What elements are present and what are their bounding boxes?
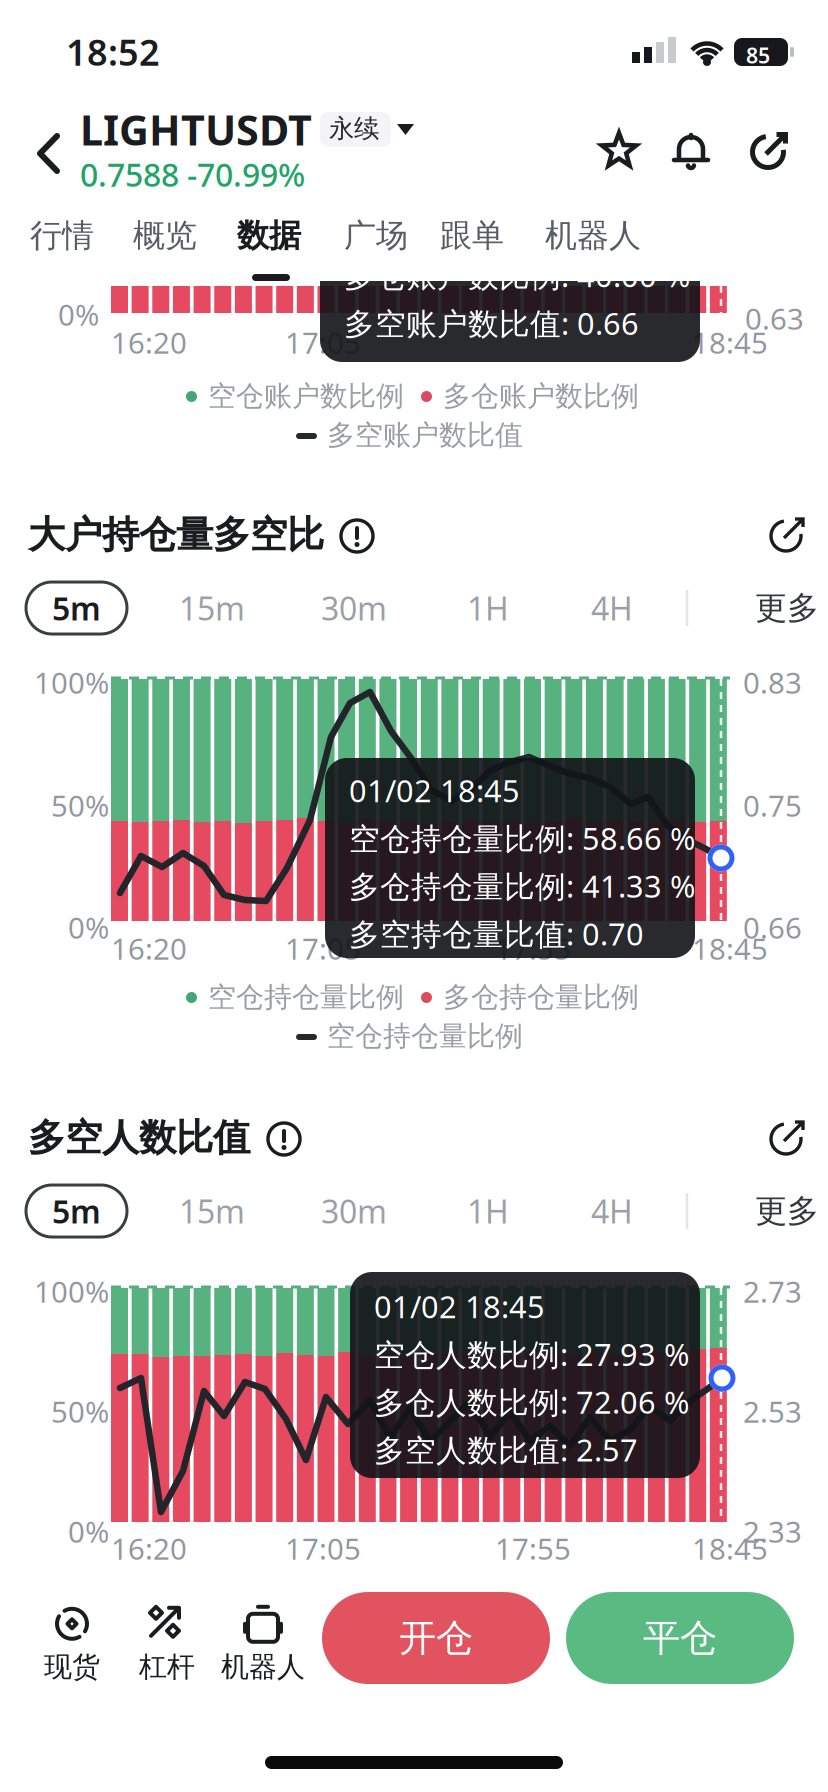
staticText: 18:45 [692,323,768,362]
button[interactable]: 现货 [17,1596,127,1692]
staticText: 多仓账户数比例: 40.00 % [344,255,690,296]
staticText: 30m [321,1190,387,1232]
button[interactable]: 4H [576,582,648,634]
staticText: 5m [52,1190,101,1232]
staticText: 更多 [755,588,819,628]
staticText: 0.63 [745,299,804,338]
button[interactable]: 30m [318,1185,390,1237]
staticText: 0% [68,1512,109,1551]
staticText: 空仓账户数比例 [208,379,404,413]
staticText: 大户持仓量多空比 [28,512,324,558]
staticText: 17:05 [285,1529,361,1568]
staticText: 空仓持仓量比例 [327,1019,523,1053]
staticText: 多空人数比值 [28,1115,250,1161]
button[interactable]: 机器人 [208,1596,318,1692]
staticText: 17:55 [495,929,571,968]
staticText: 18:45 [692,929,768,968]
staticText: 多仓账户数比例 [443,379,639,413]
staticText: 多空账户数比值 [327,418,523,452]
button[interactable]: Share [746,130,790,174]
staticText: 17:55 [495,1529,571,1568]
button[interactable]: 更多 [742,582,828,634]
staticText: 5m [52,587,101,629]
staticText: 30m [321,587,387,629]
staticText: 空仓持仓量比例: 58.66 % [349,818,695,858]
staticText: 100% [34,663,109,702]
staticText: 空仓人数比例: 27.93 % [374,1334,689,1374]
staticText: 数据 [237,216,301,255]
button[interactable]: 行情 [30,216,94,255]
staticText: 永续 [329,113,379,144]
button[interactable]: 4H [576,1185,648,1237]
button[interactable]: 30m [318,582,390,634]
button[interactable]: 杠杆 [112,1596,222,1692]
button[interactable]: 1H [452,1185,524,1237]
staticText: 4H [591,587,633,629]
staticText: 1H [467,1190,509,1232]
staticText: 50% [51,786,109,825]
staticText: 2.53 [743,1392,802,1431]
button[interactable]: 机器人 [545,216,641,255]
staticText: 01/02 18:45 [349,770,520,811]
staticText: 2.73 [743,1272,802,1311]
button[interactable]: Favorite [597,128,641,172]
staticText: 更多 [755,1191,819,1231]
staticText: 多空账户数比值: 0.66 [344,303,639,343]
staticText: 开仓 [399,1615,473,1661]
staticText: 0.7588 -70.99% [80,153,305,195]
staticText: 2.33 [743,1512,802,1551]
staticText: 多仓持仓量比例 [443,980,639,1014]
staticText: 多空持仓量比值: 0.70 [349,913,644,954]
staticText: 杠杆 [139,1650,195,1684]
staticText: 多仓人数比例: 72.06 % [374,1381,689,1422]
staticText: 概览 [133,216,197,255]
staticText: 0.66 [743,908,802,947]
staticText: 机器人 [221,1650,305,1684]
staticText: 0% [68,908,109,947]
staticText: 0.75 [743,786,802,825]
button[interactable]: 概览 [133,216,197,255]
button[interactable]: 广场 [344,216,408,255]
staticText: 1H [467,587,509,629]
staticText: 平仓 [643,1615,717,1661]
button[interactable]: 15m [176,582,248,634]
staticText: 现货 [44,1650,100,1684]
button[interactable]: Share [764,514,808,558]
button[interactable]: Share [764,1117,808,1161]
staticText: 多仓持仓量比例: 41.33 % [349,865,695,906]
staticText: 15m [179,587,245,629]
staticText: 85 [746,41,770,69]
staticText: 17:05 [285,323,361,362]
staticText: 17:05 [285,929,361,968]
staticText: 空仓持仓量比例 [208,980,404,1014]
button[interactable]: 跟单 [440,216,504,255]
button[interactable]: 1H [452,582,524,634]
staticText: 18:52 [66,28,160,76]
button[interactable]: 5m [26,1185,127,1237]
staticText: 0% [58,295,99,334]
staticText: 4H [591,1190,633,1232]
staticText: 机器人 [545,216,641,255]
staticText: 广场 [344,216,408,255]
staticText: 18:45 [692,1529,768,1568]
staticText: 16:20 [111,323,187,362]
button[interactable]: Contract selector [320,112,416,147]
staticText: 100% [34,1272,109,1311]
button[interactable]: Back [36,132,62,176]
staticText: 多空人数比值: 2.57 [374,1429,638,1470]
staticText: 01/02 18:45 [374,1286,545,1327]
button[interactable]: 开仓 [322,1592,550,1684]
button[interactable]: 平仓 [566,1592,794,1684]
staticText: LIGHTUSDT [80,102,312,157]
staticText: 15m [179,1190,245,1232]
button[interactable]: 更多 [742,1185,828,1237]
staticText: 50% [51,1392,109,1431]
button[interactable]: 5m [26,582,127,634]
staticText: 行情 [30,216,94,255]
staticText: 0.83 [743,663,802,702]
button[interactable]: Alerts [669,130,713,174]
staticText: 16:20 [111,929,187,968]
button[interactable]: 数据 [237,216,301,255]
staticText: 16:20 [111,1529,187,1568]
button[interactable]: 15m [176,1185,248,1237]
